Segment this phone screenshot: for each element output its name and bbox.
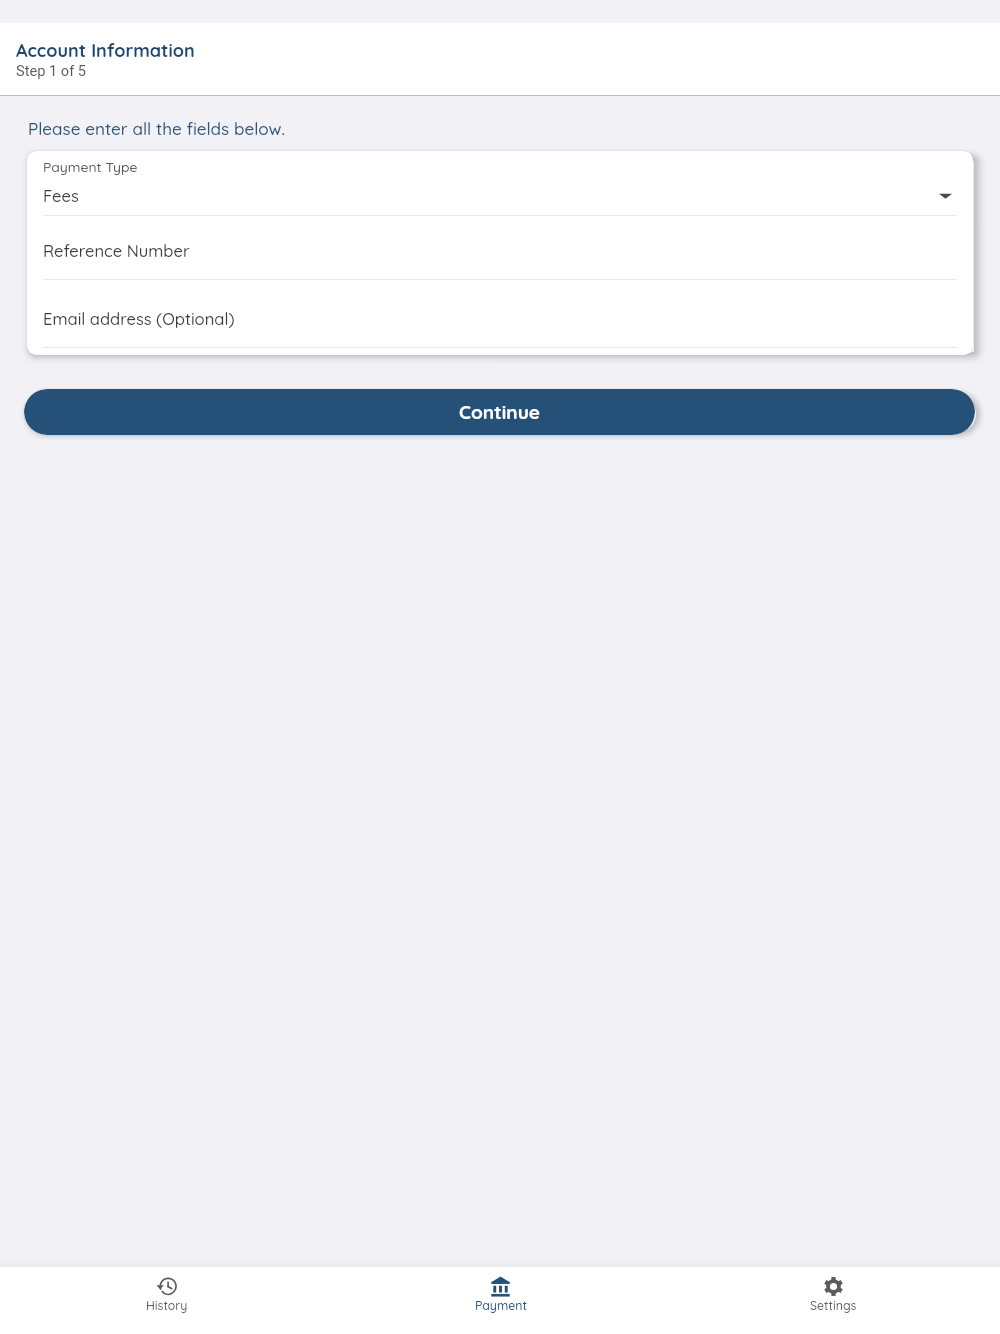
staticText: Email address (Optional) xyxy=(43,308,235,329)
button[interactable]: Payment xyxy=(334,1267,667,1334)
staticText: Account Information xyxy=(16,39,195,62)
button[interactable]: Settings xyxy=(667,1267,1000,1334)
staticText: Reference Number xyxy=(43,240,190,261)
button[interactable]: Payment Type xyxy=(27,151,973,215)
other: Open payment type list xyxy=(939,191,952,201)
staticText: Settings xyxy=(810,1298,857,1313)
staticText: Payment Type xyxy=(43,158,138,175)
staticText: Continue xyxy=(459,400,541,424)
button[interactable]: Continue xyxy=(24,389,975,435)
staticText: Please enter all the fields below. xyxy=(28,118,286,139)
button[interactable]: Email address (Optional) xyxy=(27,279,973,347)
button[interactable]: History xyxy=(0,1267,334,1334)
staticText: Step 1 of 5 xyxy=(16,62,87,79)
staticText: Fees xyxy=(43,185,79,206)
button[interactable]: Reference Number xyxy=(27,215,973,279)
staticText: Payment xyxy=(475,1298,527,1313)
staticText: History xyxy=(146,1298,188,1313)
